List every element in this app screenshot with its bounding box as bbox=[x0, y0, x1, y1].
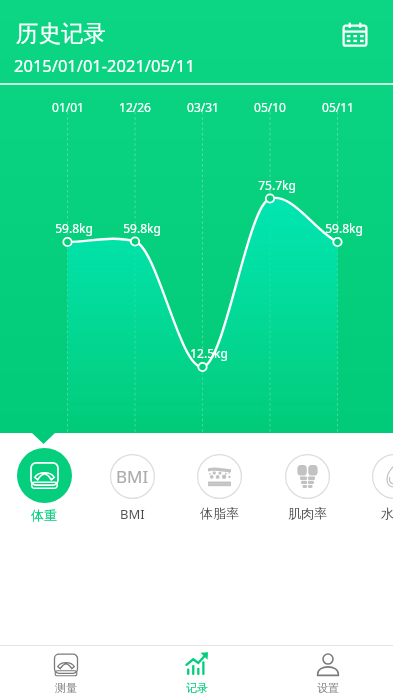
staticText: 水分 bbox=[381, 505, 393, 521]
staticText: 59.8kg bbox=[314, 220, 374, 236]
button[interactable]: 体脂率 bbox=[175, 433, 263, 533]
staticText: 体重 bbox=[31, 507, 57, 523]
staticText: 01/01 bbox=[38, 99, 98, 115]
button[interactable]: 测量 bbox=[0, 645, 131, 700]
staticText: 设置 bbox=[317, 681, 339, 695]
button[interactable]: 记录 bbox=[131, 645, 262, 700]
staticText: 12.5kg bbox=[179, 345, 239, 361]
staticText: 05/11 bbox=[308, 99, 368, 115]
button[interactable]: BMI bbox=[88, 433, 176, 533]
staticText: 体脂率 bbox=[200, 505, 239, 521]
staticText: BMI bbox=[120, 505, 145, 523]
button[interactable]: Select date range bbox=[336, 16, 374, 54]
staticText: 历史记录 bbox=[16, 19, 106, 47]
staticText: 12/26 bbox=[105, 99, 165, 115]
staticText: 测量 bbox=[55, 681, 77, 695]
staticText: 75.7kg bbox=[247, 177, 307, 193]
staticText: 03/31 bbox=[173, 99, 233, 115]
staticText: 59.8kg bbox=[44, 220, 104, 236]
button[interactable]: 水分 bbox=[350, 433, 393, 533]
staticText: 05/10 bbox=[240, 99, 300, 115]
button[interactable]: 肌肉率 bbox=[263, 433, 351, 533]
staticText: 2015/01/01-2021/05/11 bbox=[14, 54, 195, 76]
staticText: 肌肉率 bbox=[288, 505, 327, 521]
staticText: BMI bbox=[116, 465, 149, 488]
button[interactable]: 体重 bbox=[0, 433, 88, 533]
button[interactable]: 设置 bbox=[262, 645, 393, 700]
staticText: 59.8kg bbox=[112, 220, 172, 236]
staticText: 记录 bbox=[186, 681, 208, 695]
